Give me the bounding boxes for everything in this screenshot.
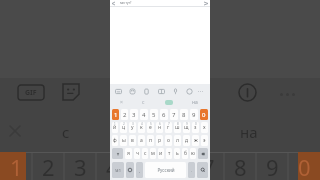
staticText: 6 [170,152,183,180]
staticText: с [62,122,70,142]
button[interactable]: 0 [200,109,208,120]
button[interactable]: . [188,162,195,178]
staticText: 8 [234,152,247,180]
button[interactable]: Voice input [170,86,180,96]
button[interactable]: с [132,97,154,108]
button[interactable]: 6 [160,109,168,120]
button[interactable]: Keyboard [113,86,123,96]
button[interactable]: д [183,135,190,146]
button[interactable]: 3 [129,122,136,133]
button[interactable]: и [158,148,164,159]
staticText: 1 [114,111,118,119]
staticText: ж [194,137,198,144]
staticText: 2 [123,122,125,126]
button[interactable]: Settings [184,86,194,96]
button[interactable]: 8 [180,109,188,120]
staticText: Русский [157,167,175,173]
button[interactable]: !#1 [112,162,124,178]
button[interactable]: 4 [140,109,148,120]
button[interactable]: с [142,148,148,159]
staticText: × [120,99,123,106]
button[interactable]: , [136,162,143,178]
button[interactable]: 5 [147,122,154,133]
button[interactable]: 1 [112,122,118,133]
button[interactable]: Clipboard [141,86,151,96]
button[interactable]: More options [198,86,207,96]
button[interactable]: Shift [112,148,123,159]
button[interactable]: в [129,135,136,146]
button[interactable]: Settings [238,83,257,102]
button[interactable]: 9 [190,109,198,120]
button[interactable]: 9 [183,122,190,133]
button[interactable]: я [125,148,132,159]
button[interactable] [154,97,184,108]
staticText: ю [191,150,195,157]
button[interactable]: Send [204,2,208,5]
button[interactable]: э [201,135,208,146]
button[interactable]: ь [174,148,180,159]
staticText: ы [122,137,126,144]
button[interactable]: Русский [145,162,186,178]
button[interactable]: 7 [170,109,178,120]
button[interactable]: ж [192,135,199,146]
button[interactable]: п [147,135,154,146]
staticText: 7 [172,111,176,119]
staticText: з [194,124,197,131]
button[interactable]: Back [112,2,115,5]
button[interactable]: Translate [156,86,166,96]
button[interactable]: 3 [130,109,138,120]
button[interactable]: × [110,97,132,108]
button[interactable]: о [165,135,172,146]
button[interactable]: 5 [150,109,158,120]
staticText: 6 [162,111,166,119]
staticText: ч [136,150,139,157]
staticText: 4 [141,122,143,126]
staticText: 5 [150,122,152,126]
button[interactable]: а [138,135,145,146]
button[interactable]: 2 [121,109,128,120]
staticText: с [144,150,147,157]
staticText: 1 [10,152,23,180]
button[interactable]: ф [112,135,118,146]
button[interactable]: Stickers [62,83,80,101]
button[interactable]: ч [134,148,140,159]
button[interactable]: т [166,148,172,159]
button[interactable]: л [174,135,181,146]
button[interactable]: 8 [174,122,181,133]
button[interactable]: 0 [192,122,199,133]
staticText: й [113,124,117,131]
staticText: ь [176,150,179,157]
button[interactable]: х [201,122,208,133]
button[interactable]: на [184,97,206,108]
button[interactable]: Stickers [127,86,137,96]
button[interactable]: ы [120,135,127,146]
button[interactable]: Emoji [126,162,134,178]
staticText: х [203,124,206,131]
staticText: е [149,124,152,131]
button[interactable]: 4 [138,122,145,133]
staticText: п [149,137,153,144]
button[interactable]: GIF [18,85,44,100]
staticText: б [184,150,187,157]
button[interactable]: 6 [156,122,163,133]
button[interactable]: Backspace [198,148,208,159]
button[interactable]: б [182,148,188,159]
staticText: 9 [192,111,196,119]
button[interactable]: 1 [112,109,119,120]
button[interactable]: ю [190,148,196,159]
button[interactable]: м [150,148,156,159]
staticText: !#1 [115,168,121,173]
staticText: GIF [25,88,37,98]
staticText: 5 [138,152,151,180]
button[interactable]: р [156,135,163,146]
staticText: г [167,124,170,131]
button[interactable]: 7 [165,122,172,133]
staticText: 1 [114,122,116,126]
staticText: 2 [123,111,127,119]
staticText: а [140,137,143,144]
staticText: 0 [202,111,206,119]
button[interactable]: Search [197,162,208,178]
staticText: р [158,137,162,144]
button[interactable]: 2 [120,122,127,133]
